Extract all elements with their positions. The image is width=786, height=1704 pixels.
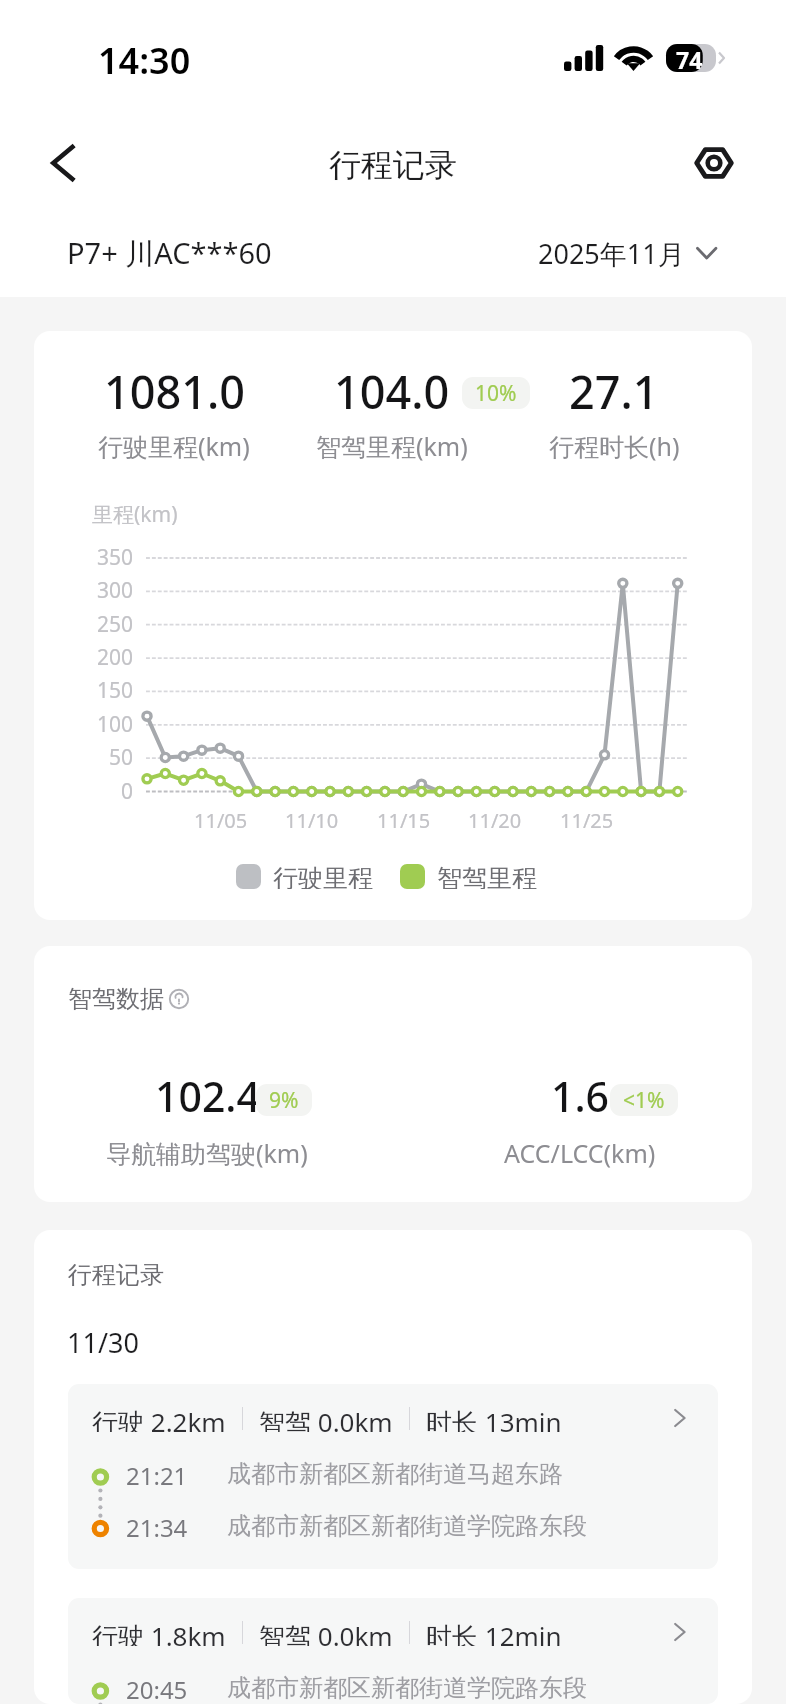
button[interactable]: Settings [682, 131, 746, 195]
staticText: 200 [97, 643, 134, 672]
staticText: 11/15 [377, 807, 431, 834]
staticText: ACC/LCC(km) [504, 1136, 656, 1170]
staticText: 350 [97, 543, 134, 572]
staticText: 行驶里程(km) [98, 429, 250, 463]
staticText: 成都市新都区新都街道学院路东段 [227, 1511, 587, 1541]
staticText: 智驾 0.0km [259, 1618, 393, 1646]
staticText: 行程记录 [329, 145, 457, 185]
staticText: 1081.0 [104, 361, 245, 422]
staticText: 行驶 2.2km [92, 1404, 226, 1432]
staticText: 智驾里程(km) [316, 429, 468, 463]
staticText: 11/05 [194, 807, 248, 834]
button[interactable]: 2025年11月 [532, 227, 724, 280]
staticText: 27.1 [569, 361, 659, 422]
staticText: 行驶里程 [273, 863, 373, 889]
staticText: 时长 13min [426, 1404, 562, 1432]
staticText: P7+ 川AC***60 [67, 233, 272, 273]
button[interactable]: Back [32, 131, 96, 195]
staticText: 行程时长(h) [549, 429, 680, 463]
staticText: 成都市新都区新都街道学院路东段 [227, 1673, 587, 1703]
staticText: 150 [97, 676, 134, 705]
staticText: 2025年11月 [538, 235, 685, 272]
staticText: 11/20 [468, 807, 522, 834]
staticText: 行驶 1.8km [92, 1618, 226, 1646]
staticText: 250 [97, 610, 134, 639]
staticText: 智驾数据 [68, 984, 164, 1014]
staticText: 0 [121, 777, 134, 806]
staticText: 10% [475, 379, 517, 408]
staticText: 智驾里程 [437, 863, 537, 889]
staticText: 21:34 [126, 1511, 188, 1544]
staticText: 74 [676, 44, 703, 72]
staticText: 11/30 [67, 1324, 139, 1361]
button[interactable]: 行驶 2.2km [68, 1384, 718, 1569]
staticText: 102.4 [155, 1068, 260, 1124]
staticText: 300 [97, 576, 134, 605]
staticText: 11/10 [285, 807, 339, 834]
staticText: 时长 12min [426, 1618, 562, 1646]
staticText: 21:21 [126, 1459, 188, 1492]
staticText: 104.0 [334, 361, 450, 422]
button[interactable]: 行驶 1.8km [68, 1598, 718, 1704]
staticText: 50 [109, 743, 134, 772]
staticText: 智驾 0.0km [259, 1404, 393, 1432]
staticText: <1% [623, 1086, 665, 1115]
staticText: 14:30 [98, 36, 191, 85]
staticText: 导航辅助驾驶(km) [106, 1136, 308, 1170]
staticText: 20:45 [126, 1673, 188, 1704]
staticText: 11/25 [560, 807, 614, 834]
staticText: 1.6 [551, 1068, 610, 1124]
staticText: 9% [269, 1086, 299, 1115]
staticText: 成都市新都区新都街道马超东路 [227, 1459, 563, 1489]
staticText: 行程记录 [68, 1260, 164, 1290]
staticText: 里程(km) [92, 500, 178, 529]
staticText: 100 [97, 710, 134, 739]
